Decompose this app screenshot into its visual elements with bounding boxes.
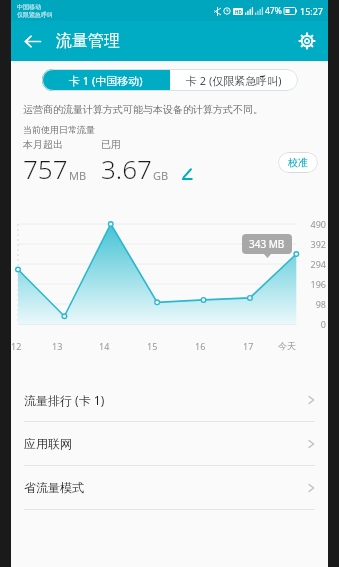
staticText: 196 xyxy=(300,278,326,290)
staticText: 757 xyxy=(23,151,68,186)
staticText: 15 xyxy=(147,340,158,352)
button[interactable]: 卡 2 (仅限紧急呼叫) xyxy=(170,69,298,91)
staticText: 流量管理 xyxy=(56,31,120,51)
staticText: GB xyxy=(153,168,169,183)
staticText: MB xyxy=(69,168,87,183)
staticText: 392 xyxy=(300,238,326,250)
button[interactable]: 卡 1 (中国移动) xyxy=(42,69,170,91)
staticText: 流量排行 (卡 1) xyxy=(24,392,105,408)
staticText: 应用联网 xyxy=(24,436,72,451)
staticText: 343 MB xyxy=(249,237,285,251)
staticText: 13 xyxy=(52,340,63,352)
staticText: 0 xyxy=(300,318,326,330)
button[interactable]: Back xyxy=(15,24,49,58)
staticText: 17 xyxy=(243,340,254,352)
staticText: 运营商的流量计算方式可能与本设备的计算方式不同。 xyxy=(23,103,263,116)
staticText: 12 xyxy=(11,340,22,352)
staticText: 中国移动 xyxy=(17,3,41,11)
button[interactable]: Settings xyxy=(291,25,323,57)
button[interactable]: 应用联网 xyxy=(11,422,328,465)
staticText: 14 xyxy=(99,340,110,352)
staticText: 本月超出 xyxy=(23,138,63,151)
staticText: 98 xyxy=(300,298,326,310)
staticText: 省流量模式 xyxy=(24,480,84,495)
staticText: 仅限紧急呼叫 xyxy=(17,11,53,19)
staticText: 卡 1 (中国移动) xyxy=(69,73,143,88)
staticText: 16 xyxy=(195,340,206,352)
button[interactable]: Edit xyxy=(177,164,197,184)
staticText: 15:27 xyxy=(300,5,324,17)
staticText: 3.67 xyxy=(101,151,152,186)
staticText: 卡 2 (仅限紧急呼叫) xyxy=(186,73,282,88)
staticText: 294 xyxy=(300,258,326,270)
staticText: 校准 xyxy=(288,156,308,169)
button[interactable]: 省流量模式 xyxy=(11,466,328,509)
staticText: HD xyxy=(235,9,242,15)
staticText: 47% xyxy=(265,5,282,17)
staticText: 今天 xyxy=(278,340,296,351)
button[interactable]: 校准 xyxy=(278,152,318,173)
staticText: 已用 xyxy=(101,138,121,151)
staticText: 490 xyxy=(300,218,326,230)
staticText: 当前使用日常流量 xyxy=(23,124,95,135)
button[interactable]: 流量排行 (卡 1) xyxy=(11,378,328,421)
